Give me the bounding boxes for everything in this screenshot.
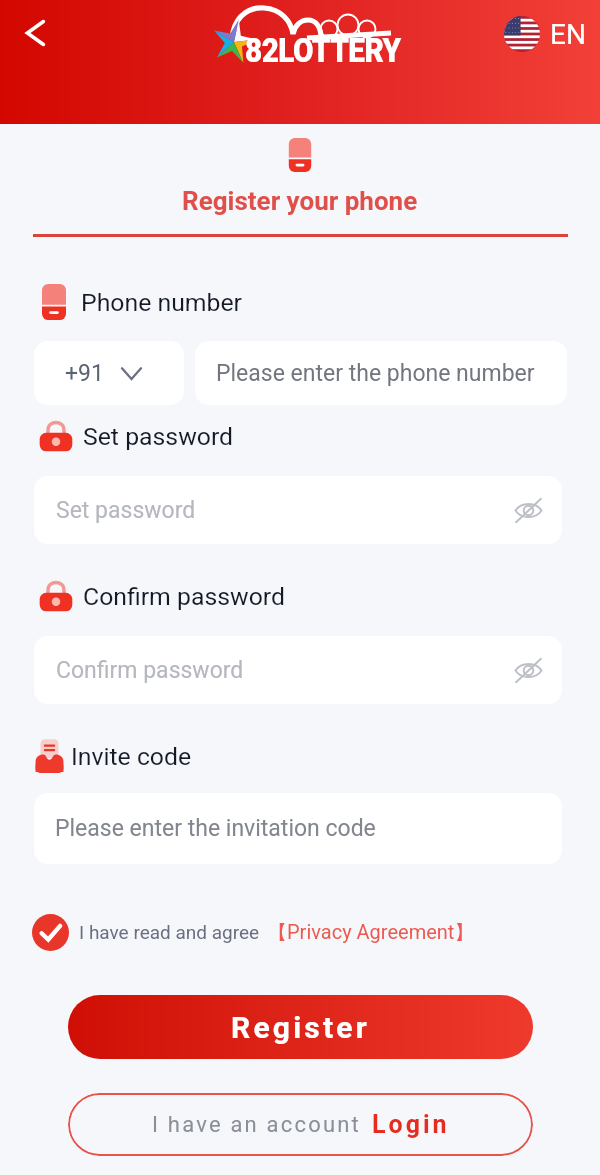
staticText: 【Privacy Agreement】 — [267, 920, 475, 945]
staticText: Please enter the phone number — [216, 360, 535, 387]
staticText: 82LOTTERY — [245, 31, 401, 70]
button[interactable]: I have an account — [68, 1093, 533, 1156]
staticText: EN — [550, 18, 586, 51]
button[interactable]: Register — [68, 995, 533, 1059]
button[interactable]: Show password — [510, 492, 546, 528]
staticText: I have an account — [152, 1112, 361, 1138]
button[interactable]: Please enter the phone number — [195, 341, 567, 405]
button[interactable]: 【Privacy Agreement】 — [267, 920, 475, 945]
staticText: Set password — [56, 497, 196, 524]
staticText: Phone number — [81, 288, 243, 317]
staticText: Login — [372, 1110, 450, 1139]
staticText: Register — [231, 1010, 370, 1045]
button[interactable]: Confirm password — [34, 636, 562, 704]
staticText: +91 — [65, 360, 104, 387]
button[interactable]: Agree — [30, 912, 70, 952]
staticText: Confirm password — [56, 657, 244, 684]
staticText: Register your phone — [182, 186, 418, 216]
staticText: Confirm password — [83, 582, 285, 611]
button[interactable]: EN — [504, 16, 586, 52]
button[interactable]: Back — [11, 9, 59, 57]
staticText: Please enter the invitation code — [55, 815, 376, 842]
staticText: Invite code — [71, 742, 192, 771]
button[interactable]: Show password — [510, 652, 546, 688]
staticText: I have read and agree — [79, 921, 260, 943]
button[interactable]: Please enter the invitation code — [34, 793, 562, 864]
staticText: Set password — [83, 422, 234, 451]
button[interactable]: +91 — [34, 341, 184, 405]
button[interactable]: Set password — [34, 476, 562, 544]
